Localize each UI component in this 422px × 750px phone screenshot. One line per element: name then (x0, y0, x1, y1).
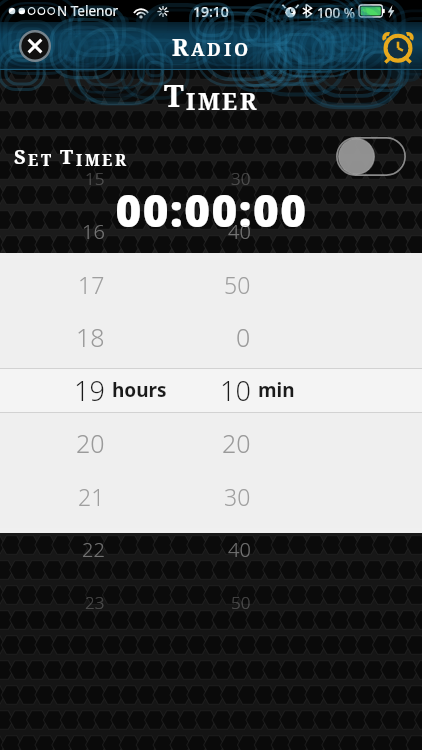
staticText: 19 (74, 372, 105, 409)
staticText: M (85, 149, 101, 170)
staticText: 15 (85, 167, 105, 190)
button[interactable]: Set Timer toggle (336, 137, 406, 176)
staticText: 40 (228, 536, 251, 563)
staticText: 30 (231, 167, 251, 190)
staticText: 21 (78, 481, 105, 512)
staticText: 100 % (317, 4, 355, 22)
staticText: 18 (76, 320, 105, 354)
staticText: E (222, 85, 239, 116)
staticText: I (224, 37, 233, 62)
staticText: N Telenor (57, 2, 119, 20)
staticText: I (186, 85, 197, 116)
staticText: 50 (224, 269, 251, 300)
button[interactable]: Alarm (374, 22, 422, 70)
staticText: 17 (78, 269, 105, 300)
staticText: 16 (82, 218, 105, 245)
staticText: M (198, 85, 221, 116)
staticText: min (258, 377, 295, 403)
staticText: 19:10 (193, 2, 229, 21)
staticText: 22 (82, 536, 105, 563)
staticText: 10 (220, 372, 251, 409)
staticText: R (172, 31, 190, 62)
staticText: 40 (228, 218, 251, 245)
staticText: hours (112, 377, 167, 403)
staticText: T (60, 143, 75, 170)
staticText: R (115, 149, 128, 170)
staticText: 20 (222, 426, 251, 460)
staticText: 23 (85, 591, 105, 614)
staticText: O (234, 37, 250, 62)
staticText: T (41, 149, 53, 170)
staticText: I (76, 149, 84, 170)
staticText: S (14, 143, 27, 170)
staticText: A (191, 37, 206, 62)
staticText: 20 (76, 426, 105, 460)
staticText: 00:00:00 (115, 180, 308, 232)
staticText: E (28, 149, 40, 170)
staticText: 50 (231, 591, 251, 614)
button[interactable]: 19 (0, 368, 422, 412)
staticText: T (164, 75, 185, 116)
staticText: E (102, 149, 114, 170)
staticText: R (240, 85, 258, 116)
staticText: 30 (224, 481, 251, 512)
staticText: 0 (236, 320, 251, 354)
staticText: D (207, 37, 223, 62)
button[interactable]: Close (13, 22, 57, 70)
